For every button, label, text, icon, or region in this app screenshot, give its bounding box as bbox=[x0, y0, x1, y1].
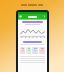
button[interactable]: More options bbox=[43, 15, 46, 18]
button[interactable] bbox=[23, 41, 42, 43]
button[interactable]: Menu bbox=[19, 15, 22, 18]
button[interactable]: Menu bbox=[18, 14, 47, 19]
button[interactable] bbox=[20, 47, 25, 54]
button[interactable] bbox=[20, 27, 45, 39]
button[interactable] bbox=[21, 4, 43, 6]
button[interactable] bbox=[26, 47, 31, 54]
button[interactable] bbox=[22, 21, 43, 23]
button[interactable] bbox=[32, 47, 38, 54]
button[interactable] bbox=[39, 47, 45, 54]
